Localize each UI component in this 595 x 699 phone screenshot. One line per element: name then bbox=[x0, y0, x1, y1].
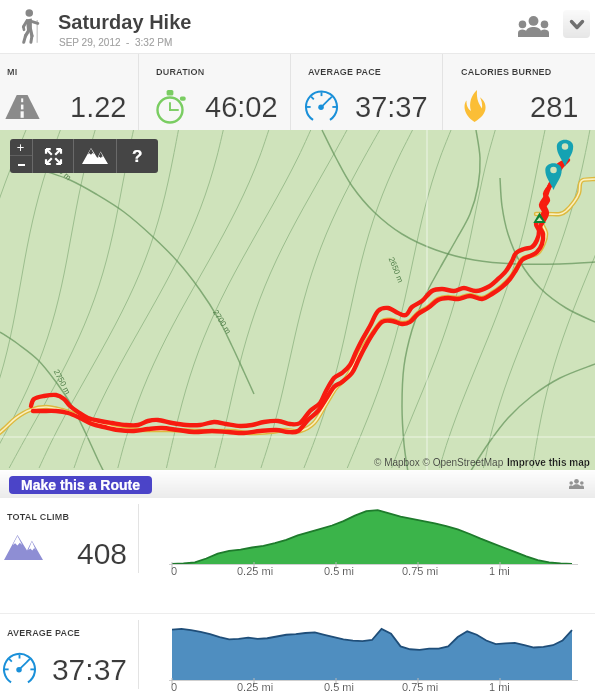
staticText: Improve this map bbox=[507, 457, 590, 468]
staticText: Saturday Hike bbox=[58, 11, 192, 33]
staticText: TOTAL CLIMB bbox=[7, 512, 70, 522]
staticText: MI bbox=[7, 67, 18, 77]
staticText: 0.75 mi bbox=[402, 565, 439, 577]
staticText: 281 bbox=[530, 91, 579, 123]
button[interactable]: Zoom in and out bbox=[10, 139, 32, 173]
button[interactable]: Friends bbox=[565, 474, 587, 494]
button[interactable]: Make this a Route bbox=[9, 476, 152, 494]
staticText: CALORIES BURNED bbox=[461, 67, 552, 77]
staticText: ? bbox=[132, 147, 143, 166]
staticText: 1 mi bbox=[489, 565, 510, 577]
staticText: © Mapbox © OpenStreetMap bbox=[374, 457, 507, 468]
staticText: 408 bbox=[0, 537, 127, 571]
staticText: + bbox=[17, 141, 25, 154]
button[interactable]: Friends bbox=[515, 12, 551, 40]
staticText: 0 bbox=[171, 681, 178, 693]
staticText: 0.5 mi bbox=[324, 681, 354, 693]
staticText: 0.25 mi bbox=[237, 565, 274, 577]
staticText: 0.75 mi bbox=[402, 681, 439, 693]
staticText: 46:02 bbox=[205, 91, 278, 123]
staticText: 37:37 bbox=[0, 653, 127, 687]
staticText: AVERAGE PACE bbox=[308, 67, 382, 77]
staticText: 0.25 mi bbox=[237, 681, 274, 693]
staticText: Make this a Route bbox=[21, 477, 141, 493]
staticText: AVERAGE PACE bbox=[7, 628, 81, 638]
button[interactable]: Fullscreen bbox=[33, 139, 73, 173]
staticText: 37:37 bbox=[355, 91, 428, 123]
staticText: 0.5 mi bbox=[324, 565, 354, 577]
button[interactable]: Help bbox=[117, 139, 158, 173]
staticText: 0 bbox=[171, 565, 178, 577]
staticText: SEP 29, 2012 - 3:32 PM bbox=[59, 37, 173, 48]
staticText: 1.22 bbox=[70, 91, 127, 123]
button[interactable]: Terrain layer bbox=[74, 139, 116, 173]
staticText: 1 mi bbox=[489, 681, 510, 693]
button[interactable]: Expand details bbox=[563, 10, 590, 38]
staticText: DURATION bbox=[156, 67, 205, 77]
